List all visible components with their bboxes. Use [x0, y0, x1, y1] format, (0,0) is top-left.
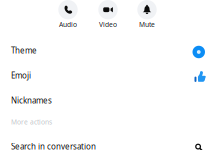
staticText: Audio [59, 20, 77, 29]
staticText: Search in conversation [11, 141, 96, 150]
button[interactable]: Mute [0, 0, 218, 32]
button[interactable]: Emoji [0, 63, 218, 88]
staticText: Nicknames [11, 95, 52, 106]
button[interactable]: Video [0, 0, 218, 32]
button[interactable]: Audio [0, 0, 218, 32]
button[interactable]: Nicknames [0, 88, 218, 113]
staticText: Mute [139, 20, 155, 29]
staticText: Theme [11, 45, 37, 56]
staticText: More actions [11, 118, 52, 126]
staticText: Video [99, 20, 117, 29]
button[interactable]: Search in conversation [0, 134, 218, 150]
staticText: Emoji [11, 70, 31, 81]
button[interactable]: Theme [0, 38, 218, 63]
